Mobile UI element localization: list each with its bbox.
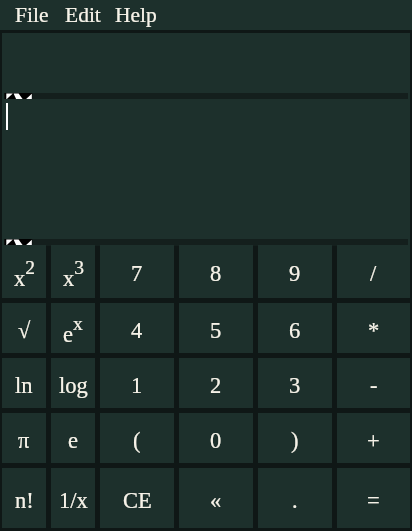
- button[interactable]: 1/x: [51, 468, 95, 528]
- button[interactable]: 7: [100, 245, 174, 298]
- button[interactable]: 3: [258, 358, 332, 408]
- staticText: e: [68, 428, 78, 453]
- staticText: (: [133, 428, 141, 453]
- button[interactable]: 2: [179, 358, 253, 408]
- staticText: 6: [289, 318, 301, 343]
- button[interactable]: -: [337, 358, 410, 408]
- button[interactable]: CE: [100, 468, 174, 528]
- staticText: 8: [210, 261, 222, 286]
- staticText: File: [15, 3, 49, 27]
- staticText: +: [367, 428, 380, 453]
- button[interactable]: /: [337, 245, 410, 298]
- button[interactable]: 5: [179, 303, 253, 353]
- staticText: 3: [289, 373, 301, 398]
- button[interactable]: ln: [2, 358, 46, 408]
- staticText: ): [291, 428, 299, 453]
- staticText: π: [18, 428, 30, 453]
- staticText: Help: [115, 3, 157, 27]
- other: Scroll: [4, 239, 32, 246]
- staticText: .: [292, 488, 298, 513]
- button[interactable]: n!: [2, 468, 46, 528]
- button[interactable]: 9: [258, 245, 332, 298]
- staticText: 2: [210, 373, 222, 398]
- staticText: 1: [131, 373, 143, 398]
- staticText: √: [18, 318, 31, 343]
- button[interactable]: +: [337, 413, 410, 463]
- button[interactable]: .: [258, 468, 332, 528]
- staticText: =: [367, 488, 380, 513]
- button[interactable]: 0: [179, 413, 253, 463]
- staticText: 0: [210, 428, 222, 453]
- button[interactable]: =: [337, 468, 410, 528]
- staticText: ln: [15, 373, 33, 398]
- button[interactable]: 1: [100, 358, 174, 408]
- staticText: x3: [63, 257, 84, 291]
- staticText: n!: [15, 488, 34, 513]
- staticText: log: [59, 373, 88, 398]
- button[interactable]: x3: [51, 245, 95, 298]
- staticText: 7: [131, 261, 143, 286]
- button[interactable]: ): [258, 413, 332, 463]
- button[interactable]: Edit: [60, 0, 106, 30]
- button[interactable]: «: [179, 468, 253, 528]
- button[interactable]: x2: [2, 245, 46, 298]
- staticText: 4: [131, 318, 143, 343]
- button[interactable]: ex: [51, 303, 95, 353]
- button[interactable]: (: [100, 413, 174, 463]
- button[interactable]: *: [337, 303, 410, 353]
- button[interactable]: File: [10, 0, 54, 30]
- other: Scroll: [4, 93, 32, 100]
- button[interactable]: e: [51, 413, 95, 463]
- staticText: «: [210, 488, 222, 513]
- button[interactable]: π: [2, 413, 46, 463]
- staticText: 1/x: [59, 488, 88, 513]
- staticText: *: [368, 318, 380, 343]
- staticText: Edit: [65, 3, 101, 27]
- button[interactable]: log: [51, 358, 95, 408]
- button[interactable]: √: [2, 303, 46, 353]
- staticText: -: [370, 373, 378, 398]
- button[interactable]: 8: [179, 245, 253, 298]
- button[interactable]: 6: [258, 303, 332, 353]
- staticText: 5: [210, 318, 222, 343]
- staticText: CE: [123, 488, 152, 513]
- staticText: ex: [63, 313, 83, 347]
- button[interactable]: 4: [100, 303, 174, 353]
- staticText: /: [370, 261, 377, 286]
- staticText: x2: [14, 257, 35, 291]
- button[interactable]: Help: [110, 0, 162, 30]
- staticText: 9: [289, 261, 301, 286]
